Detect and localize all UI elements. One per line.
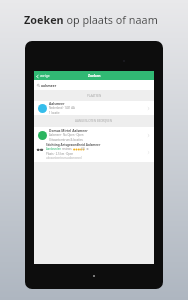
staticText: Aanbevolen: [46, 147, 61, 151]
staticText: Plaats · 2.5 km · Open: [46, 152, 74, 156]
staticText: 4.5: [81, 147, 85, 151]
button[interactable]: vorige: [34, 73, 52, 79]
staticText: Nederland · 1431 AA: [49, 106, 75, 110]
staticText: reviews: [62, 147, 72, 151]
staticText: vorige: [40, 74, 50, 78]
staticText: Uitvaartcentrum & locaties: [49, 138, 83, 142]
staticText: PLAATSEN: [87, 94, 102, 98]
staticText: Zoeken: [88, 73, 101, 78]
button[interactable]: Aalsmeer: [34, 101, 154, 115]
button[interactable]: aalsmeer: [34, 80, 154, 90]
staticText: AANGESLOTEN BEDRIJVEN: [75, 119, 113, 123]
staticText: Aalsmeer: [49, 101, 65, 105]
staticText: Zoeken op plaats of naam: [24, 12, 158, 27]
staticText: 1 locatie: [49, 111, 60, 115]
button[interactable]: Stichting Artsgezondheid Aalsmeer: [34, 143, 154, 162]
staticText: uitvaartcentrum-aalsmeer.nl: [46, 156, 82, 160]
staticText: aalsmeer: [41, 83, 57, 87]
button[interactable]: Domus Mirtel Aalsmeer: [34, 127, 154, 143]
staticText: Aalsmeer · Nu Open · Open: [49, 133, 84, 137]
staticText: Domus Mirtel Aalsmeer: [49, 128, 88, 132]
staticText: Stichting Artsgezondheid Aalsmeer: [46, 143, 101, 147]
